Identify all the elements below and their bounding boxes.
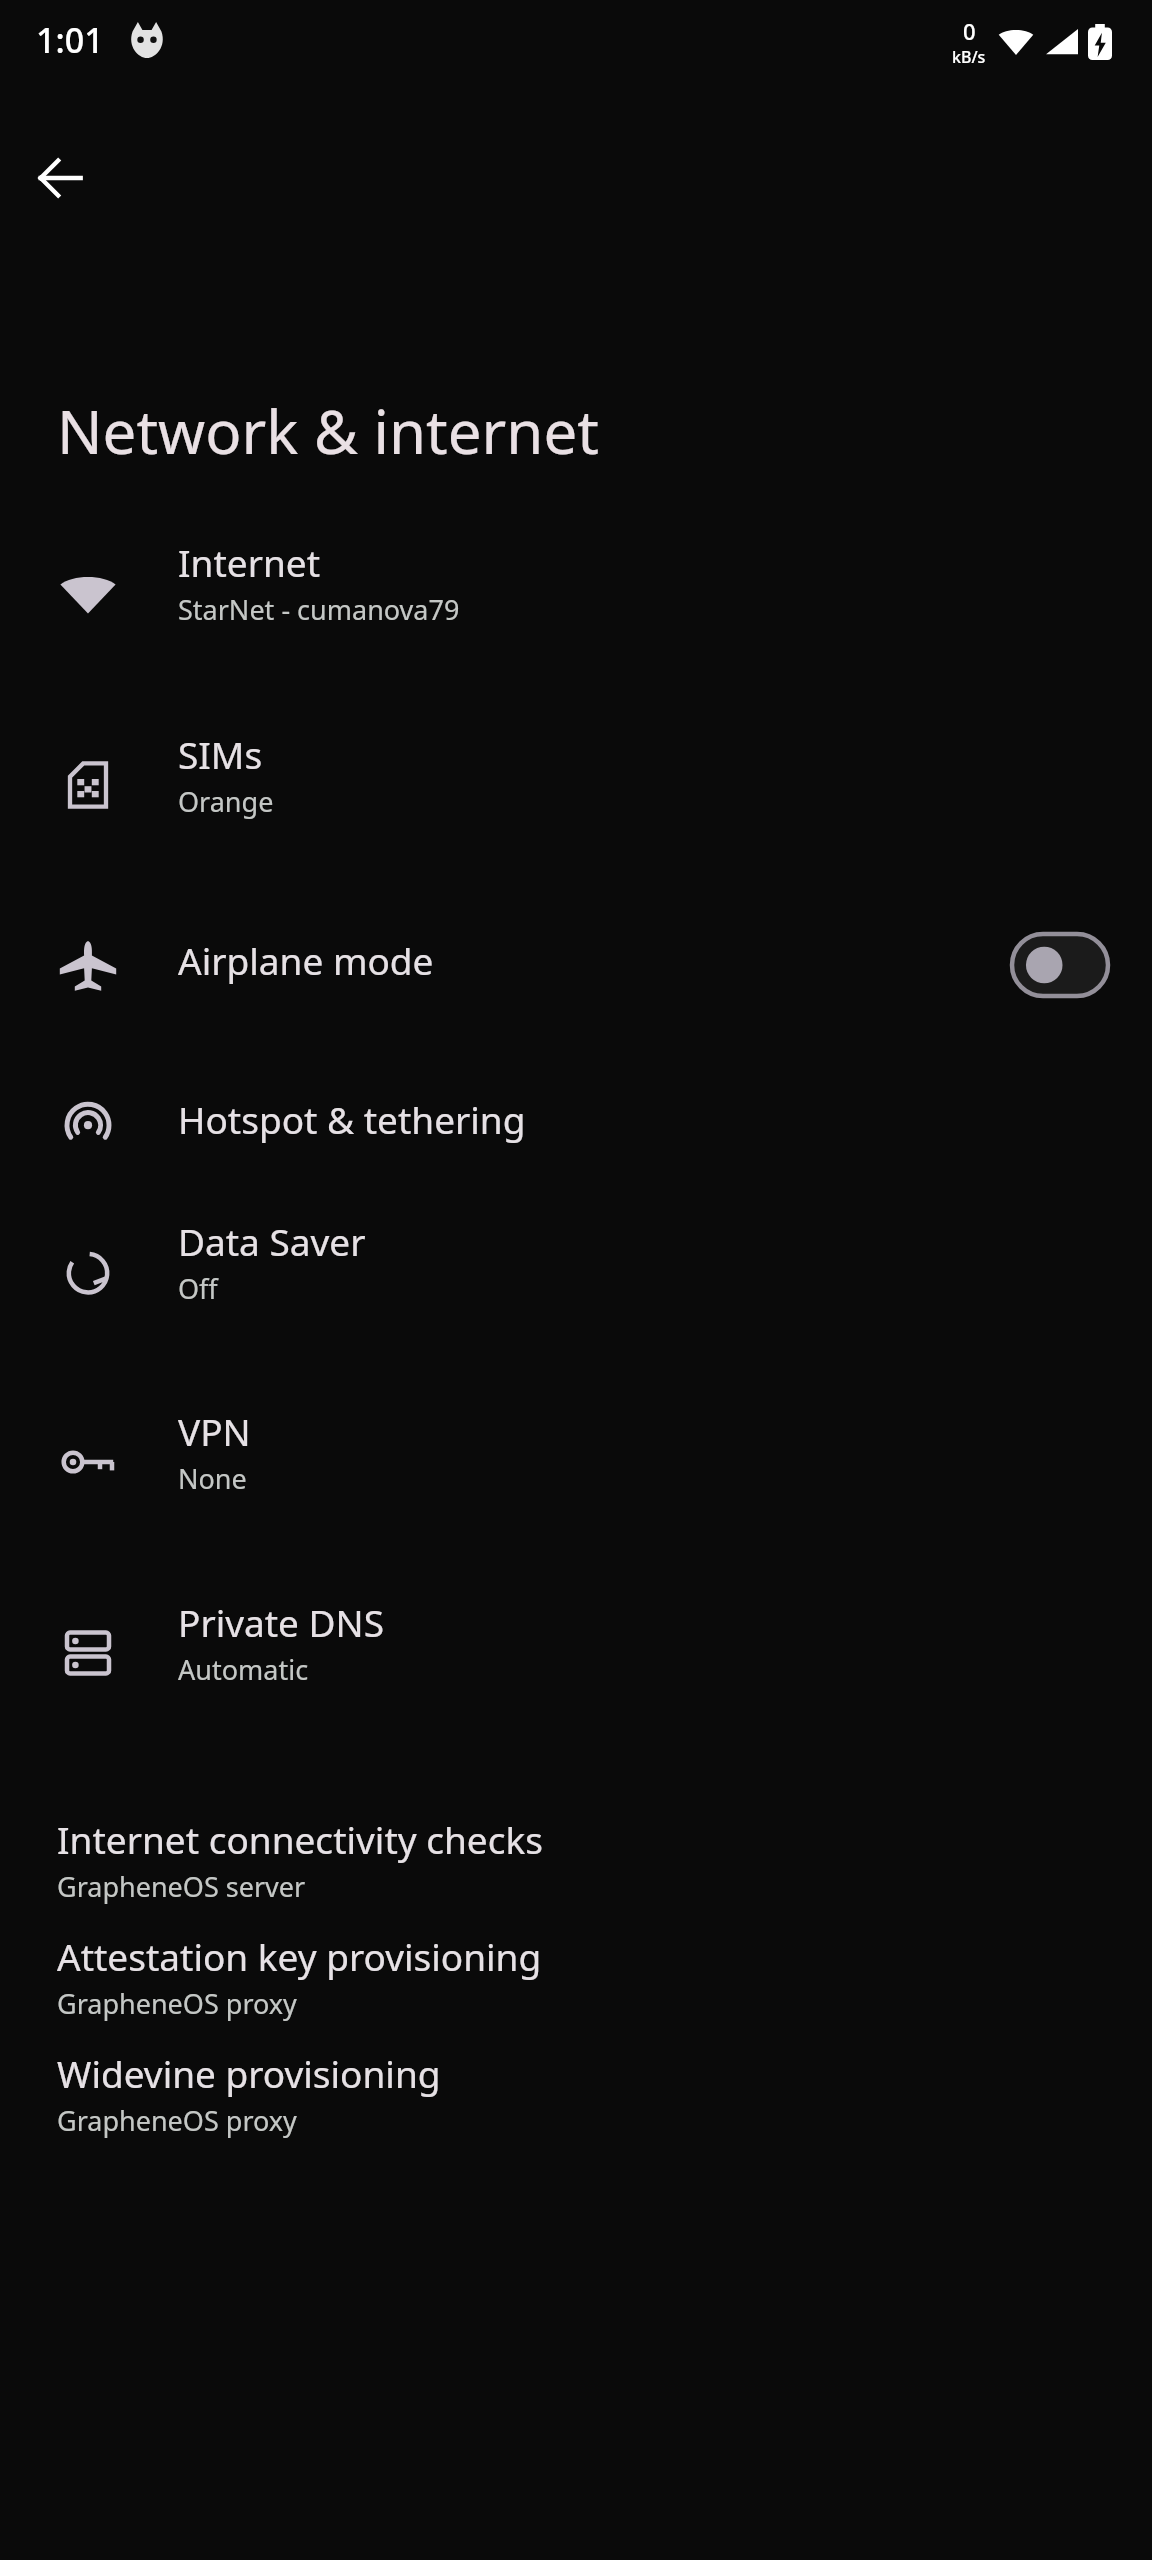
button[interactable]: Private DNS [0, 1577, 1152, 1729]
button[interactable]: Internet connectivity checks [0, 1806, 1152, 1923]
staticText: Internet [178, 537, 321, 587]
staticText: Internet connectivity checks [57, 1814, 543, 1864]
staticText: Orange [178, 783, 274, 820]
button[interactable]: Hotspot & tethering [0, 1060, 1152, 1188]
button[interactable]: Internet [0, 517, 1152, 669]
staticText: 0 [963, 16, 976, 46]
staticText: GrapheneOS server [57, 1868, 306, 1905]
staticText: Hotspot & tethering [178, 1094, 526, 1144]
staticText: StarNet - cumanova79 [178, 591, 460, 628]
staticText: Airplane mode [178, 935, 434, 985]
staticText: Widevine provisioning [57, 2048, 441, 2098]
button[interactable]: Airplane mode toggle [1000, 925, 1120, 1005]
staticText: None [178, 1460, 247, 1497]
button[interactable]: SIMs [0, 709, 1152, 861]
button[interactable]: Airplane mode [0, 901, 1152, 1029]
staticText: SIMs [178, 729, 263, 779]
staticText: GrapheneOS proxy [57, 1985, 297, 2022]
button[interactable]: Data Saver [0, 1196, 1152, 1348]
staticText: GrapheneOS proxy [57, 2102, 297, 2139]
staticText: Off [178, 1270, 218, 1307]
button[interactable]: VPN [0, 1386, 1152, 1538]
staticText: VPN [178, 1406, 251, 1456]
staticText: Network & internet [57, 390, 599, 472]
button[interactable]: Attestation key provisioning [0, 1923, 1152, 2040]
staticText: 1:01 [36, 17, 104, 63]
staticText: Attestation key provisioning [57, 1931, 542, 1981]
staticText: Data Saver [178, 1216, 366, 1266]
staticText: kB/s [952, 46, 986, 68]
button[interactable]: Back [12, 130, 108, 226]
staticText: Private DNS [178, 1597, 385, 1647]
staticText: Automatic [178, 1651, 309, 1688]
button[interactable]: Widevine provisioning [0, 2040, 1152, 2157]
